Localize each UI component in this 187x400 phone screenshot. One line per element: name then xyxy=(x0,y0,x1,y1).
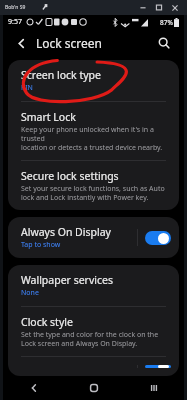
button[interactable]: Smart Lock xyxy=(8,102,179,160)
staticText: Keep your phone unlocked when it's in a … xyxy=(21,125,167,152)
staticText: Screen lock type xyxy=(21,68,101,82)
button[interactable]: Roaming clock toggle xyxy=(145,365,171,368)
staticText: Clock style xyxy=(21,315,73,329)
staticText: Set the type and color for the clock on … xyxy=(21,330,159,348)
button[interactable]: Clock style xyxy=(8,307,179,356)
button[interactable]: Wallpaper services xyxy=(8,265,179,306)
button[interactable]: Always On Display toggle xyxy=(145,231,171,245)
staticText: 87% xyxy=(160,18,173,27)
button[interactable]: Close xyxy=(167,0,183,15)
staticText: Lock screen xyxy=(36,35,103,51)
button[interactable]: Recents xyxy=(124,376,184,400)
staticText: Wallpaper services xyxy=(21,273,113,287)
button[interactable]: Search xyxy=(154,33,174,53)
button[interactable]: Maximize xyxy=(151,0,167,15)
staticText: Tap to show xyxy=(21,240,61,250)
staticText: Always On Display xyxy=(21,225,111,239)
button[interactable]: Back xyxy=(11,33,31,53)
staticText: PIN xyxy=(21,83,33,93)
staticText: Bob'n S9 xyxy=(5,4,26,11)
staticText: None xyxy=(21,288,39,298)
button[interactable]: Screen lock type xyxy=(8,60,179,101)
button[interactable]: Back xyxy=(3,376,64,400)
button[interactable]: Secure lock settings xyxy=(8,161,179,210)
staticText: Secure lock settings xyxy=(21,169,119,183)
staticText: Smart Lock xyxy=(21,110,76,124)
button[interactable]: Minimize xyxy=(135,0,151,15)
button[interactable]: Home xyxy=(64,376,124,400)
staticText: 9:57 xyxy=(8,17,22,27)
button[interactable]: Roaming clock xyxy=(8,357,179,376)
button[interactable]: Always On Display xyxy=(8,217,179,258)
staticText: Set your secure lock functions, such as … xyxy=(21,184,165,202)
